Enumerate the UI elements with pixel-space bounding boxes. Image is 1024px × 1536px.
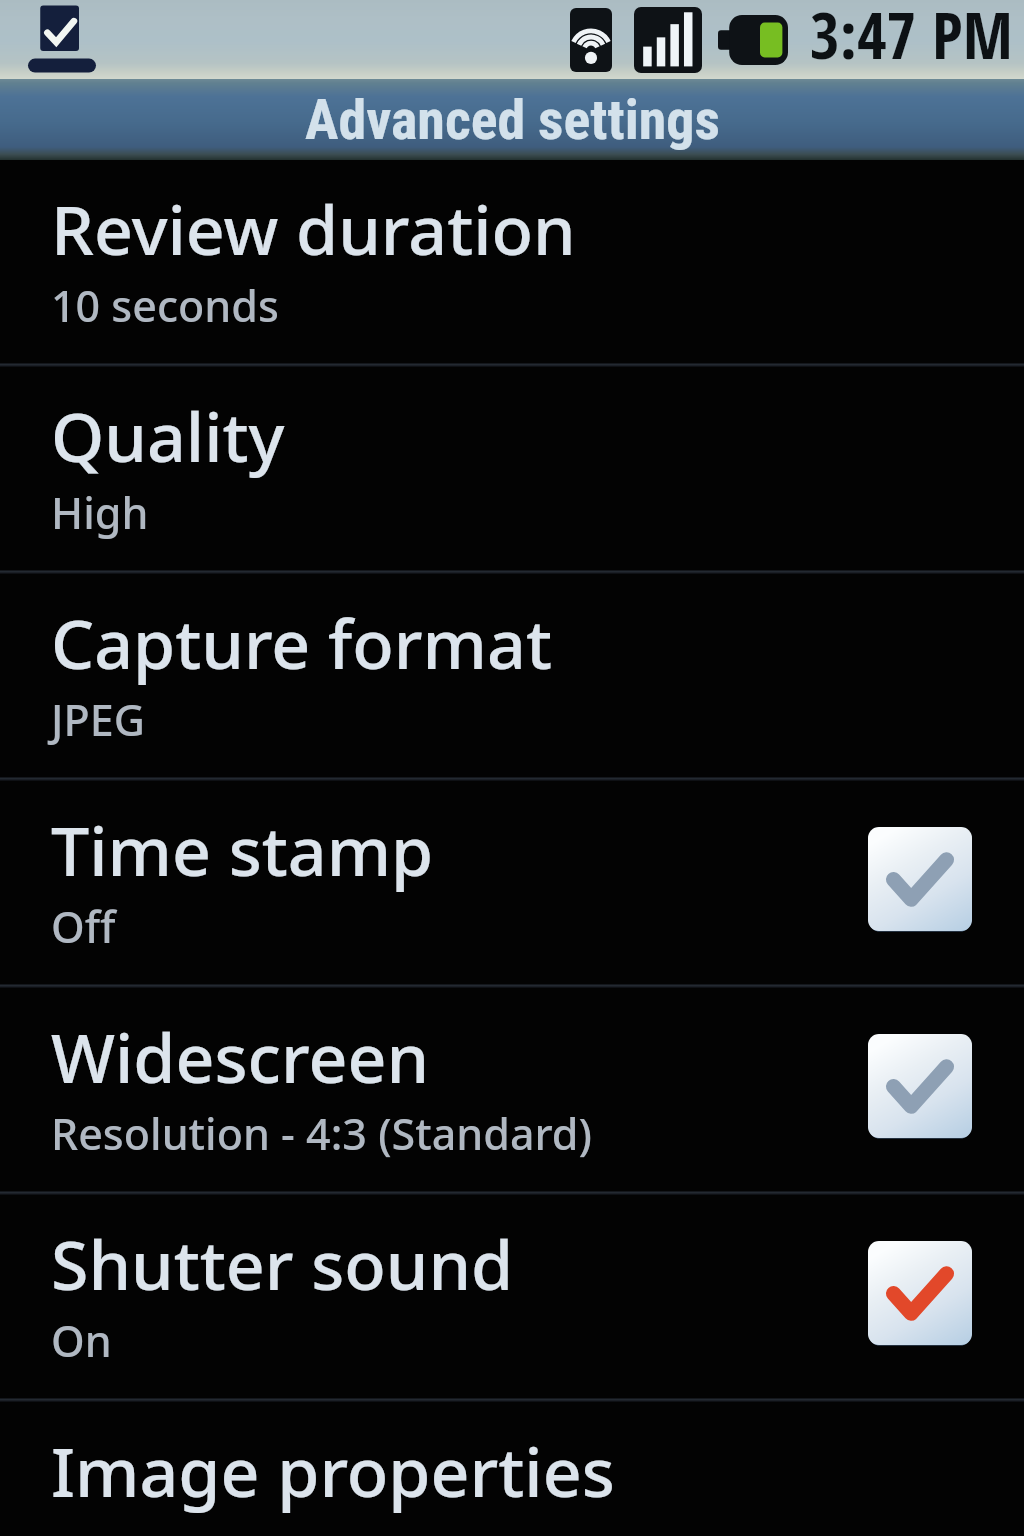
- staticText: Capture format: [51, 596, 552, 689]
- button[interactable]: Time stamp: [0, 781, 1024, 984]
- staticText: Resolution - 4:3 (Standard): [51, 1104, 592, 1163]
- staticText: 3:47 PM: [810, 0, 1013, 70]
- staticText: Time stamp: [51, 803, 434, 896]
- button[interactable]: Download complete: [28, 4, 96, 74]
- staticText: Review duration: [51, 182, 576, 275]
- staticText: Off: [51, 897, 116, 956]
- staticText: Shutter sound: [51, 1217, 514, 1310]
- staticText: 10 seconds: [51, 276, 279, 335]
- button[interactable]: Capture format: [0, 574, 1024, 777]
- staticText: On: [51, 1311, 112, 1370]
- staticText: Image properties: [51, 1424, 615, 1517]
- button[interactable]: Toggle Shutter sound: [868, 1241, 972, 1345]
- staticText: Quality: [51, 389, 285, 482]
- button[interactable]: Widescreen: [0, 988, 1024, 1191]
- button[interactable]: Review duration: [0, 160, 1024, 363]
- button[interactable]: Shutter sound: [0, 1195, 1024, 1398]
- staticText: High: [51, 483, 149, 542]
- staticText: JPEG: [51, 690, 145, 749]
- staticText: Widescreen: [51, 1010, 430, 1103]
- button[interactable]: Quality: [0, 367, 1024, 570]
- staticText: Advanced settings: [305, 87, 720, 153]
- button[interactable]: Image properties: [0, 1402, 1024, 1536]
- button[interactable]: Toggle Widescreen: [868, 1034, 972, 1138]
- button[interactable]: Toggle Time stamp: [868, 827, 972, 931]
